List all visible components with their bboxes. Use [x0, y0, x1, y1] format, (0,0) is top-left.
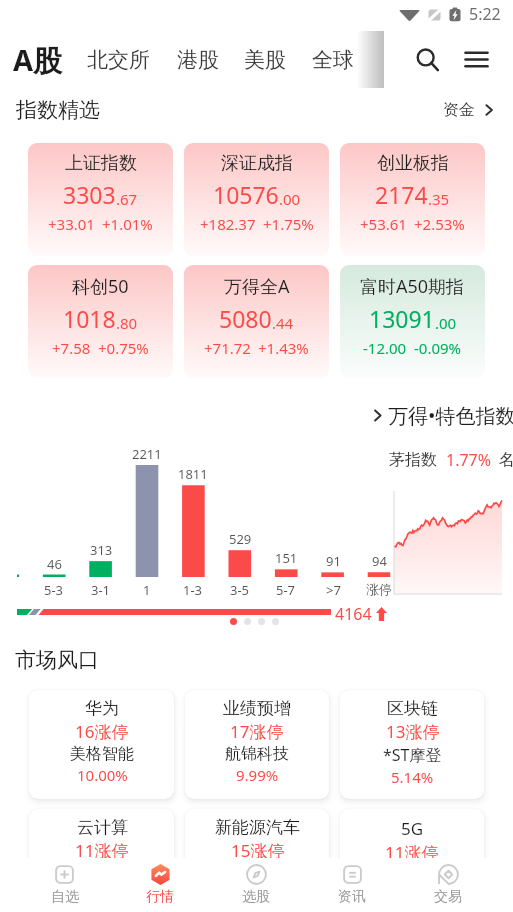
- button[interactable]: Menu: [454, 31, 498, 88]
- staticText: 5080: [219, 303, 272, 334]
- button[interactable]: Search: [405, 31, 449, 88]
- staticText: 2174: [375, 179, 428, 210]
- button[interactable]: 上证指数: [28, 143, 173, 256]
- button[interactable]: 业绩预增: [185, 690, 329, 799]
- button[interactable]: 全球: [312, 47, 354, 73]
- staticText: 深证成指: [221, 152, 293, 175]
- button[interactable]: 资金: [443, 100, 497, 120]
- staticText: 5-7: [276, 581, 296, 599]
- staticText: .44: [272, 313, 294, 333]
- button[interactable]: 云计算: [29, 809, 174, 912]
- staticText: +1.75%: [263, 214, 314, 234]
- staticText: 94: [372, 552, 387, 570]
- staticText: 5.14%: [391, 767, 434, 787]
- staticText: 9.99%: [236, 765, 279, 785]
- staticText: 全球: [312, 47, 354, 73]
- staticText: 名企: [499, 450, 513, 470]
- staticText: .00: [279, 189, 301, 209]
- staticText: 1018: [63, 303, 116, 334]
- staticText: 区块链: [387, 698, 438, 719]
- staticText: 航锦科技: [225, 744, 289, 764]
- staticText: 万得•特色指数: [388, 402, 513, 429]
- button[interactable]: 区块链: [340, 690, 484, 799]
- staticText: 11涨停: [75, 839, 129, 862]
- staticText: +53.61: [360, 214, 407, 234]
- staticText: .67: [116, 189, 138, 209]
- staticText: >7: [326, 581, 341, 599]
- button[interactable]: 港股: [177, 47, 219, 73]
- staticText: +182.37: [200, 214, 256, 234]
- button[interactable]: 万得全A: [184, 265, 329, 378]
- button[interactable]: 美股: [244, 47, 286, 73]
- button[interactable]: A股: [13, 40, 63, 80]
- staticText: 业绩预增: [223, 698, 291, 719]
- staticText: 创业板指: [377, 152, 449, 175]
- staticText: +2.53%: [414, 214, 465, 234]
- staticText: *ST摩登: [383, 744, 442, 766]
- staticText: 行情: [146, 888, 174, 906]
- staticText: 16涨停: [75, 720, 129, 743]
- staticText: 华为: [85, 698, 119, 719]
- staticText: 1811: [178, 465, 208, 483]
- staticText: 151: [275, 549, 298, 567]
- staticText: 5-3: [44, 581, 64, 599]
- staticText: 1: [143, 581, 151, 599]
- staticText: +1.01%: [102, 214, 153, 234]
- button[interactable]: 新能源汽车: [185, 809, 329, 912]
- staticText: 313: [90, 541, 113, 559]
- button[interactable]: 科创50: [28, 265, 173, 378]
- staticText: 中兴通讯: [380, 865, 444, 885]
- staticText: 15涨停: [231, 839, 285, 862]
- button[interactable]: 交易: [400, 858, 496, 912]
- staticText: 选股: [242, 888, 270, 906]
- staticText: -12.00: [363, 338, 407, 358]
- staticText: +71.72: [204, 338, 251, 358]
- staticText: 万得全A: [224, 274, 290, 299]
- staticText: 资金: [443, 100, 475, 120]
- button[interactable]: 创业板指: [340, 143, 485, 256]
- staticText: 上证指数: [65, 152, 137, 175]
- staticText: 市场风口: [15, 647, 99, 673]
- staticText: 11涨停: [385, 841, 439, 864]
- staticText: 91: [326, 552, 341, 570]
- staticText: 新能源汽车: [215, 817, 300, 838]
- staticText: 涨停: [366, 581, 392, 597]
- button[interactable]: 资讯: [304, 858, 400, 912]
- staticText: 3303: [63, 179, 116, 210]
- button[interactable]: 富时A50期指: [340, 265, 485, 378]
- staticText: 资讯: [338, 888, 366, 906]
- button[interactable]: 行情: [112, 858, 208, 912]
- staticText: 中科曙光: [70, 863, 134, 883]
- button[interactable]: 深证成指: [184, 143, 329, 256]
- button[interactable]: 华为: [29, 690, 174, 799]
- staticText: -0.09%: [414, 338, 462, 358]
- staticText: 6.44%: [236, 884, 279, 904]
- staticText: 5:22: [469, 3, 501, 25]
- staticText: .00: [435, 313, 457, 333]
- staticText: 指数精选: [16, 97, 100, 123]
- staticText: 46: [47, 555, 62, 573]
- button[interactable]: 北交所: [87, 47, 150, 73]
- staticText: 交易: [434, 888, 462, 906]
- button[interactable]: 选股: [208, 858, 304, 912]
- staticText: +33.01: [48, 214, 95, 234]
- staticText: 1-3: [183, 581, 203, 599]
- staticText: A股: [13, 40, 63, 80]
- staticText: 4164: [335, 603, 372, 625]
- staticText: +7.58: [52, 338, 91, 358]
- staticText: 2211: [132, 445, 162, 463]
- staticText: 529: [229, 530, 252, 548]
- button[interactable]: 5G: [340, 809, 484, 912]
- staticText: 茅指数: [389, 450, 437, 470]
- staticText: 科创50: [72, 274, 129, 299]
- staticText: 港股: [177, 47, 219, 73]
- staticText: 比亚迪: [234, 863, 282, 883]
- button[interactable]: 自选: [17, 858, 112, 912]
- staticText: 富时A50期指: [360, 274, 465, 299]
- staticText: 1.77%: [446, 449, 492, 471]
- staticText: 3-5: [230, 581, 250, 599]
- staticText: 5G: [401, 817, 424, 840]
- staticText: 云计算: [77, 817, 128, 838]
